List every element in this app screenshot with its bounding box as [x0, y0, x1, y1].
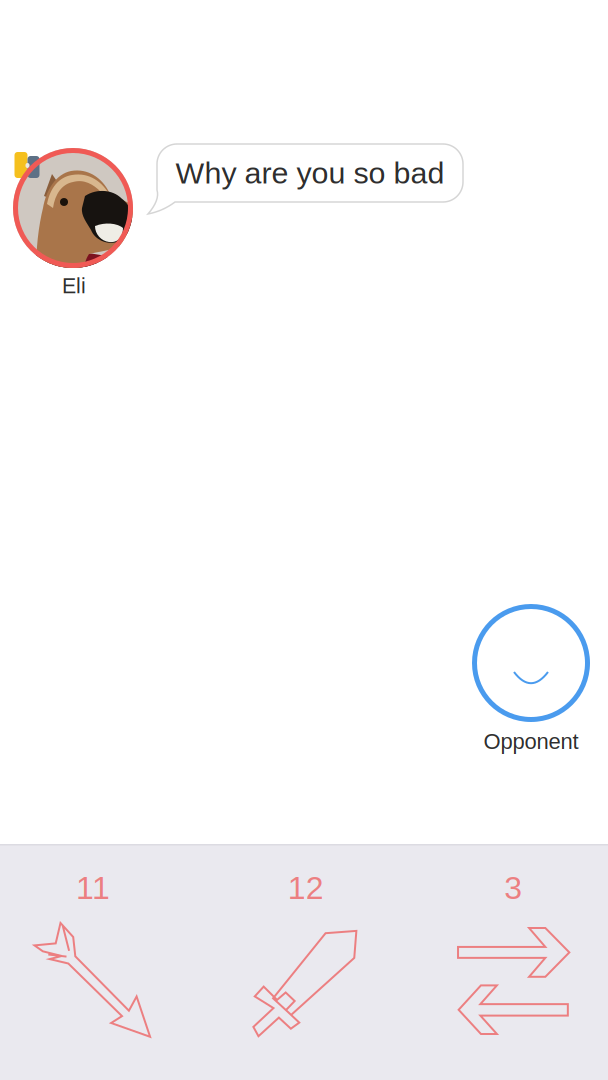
staticText: 3: [504, 870, 522, 906]
staticText: Opponent: [483, 729, 578, 754]
button[interactable]: Swords: [203, 844, 405, 1080]
staticText: Why are you so bad: [175, 156, 444, 190]
staticText: Eli: [62, 274, 86, 298]
staticText: 12: [288, 870, 324, 906]
button[interactable]: Arrows: [0, 844, 203, 1080]
staticText: 11: [76, 870, 110, 906]
button[interactable]: Swaps: [405, 844, 608, 1080]
